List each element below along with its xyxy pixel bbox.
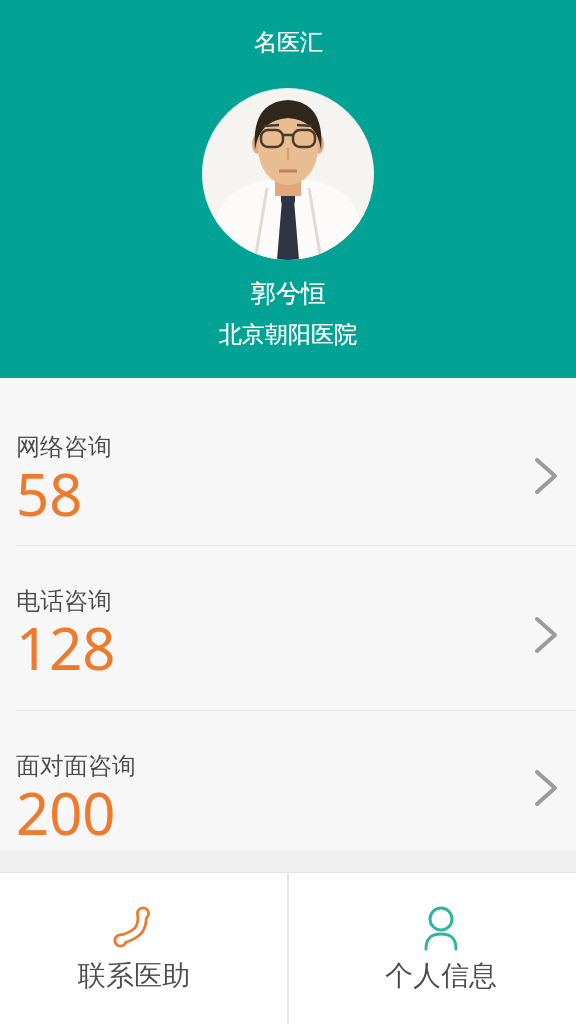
button[interactable]: 个人信息	[297, 872, 576, 1024]
button[interactable]	[202, 88, 374, 260]
staticText: 个人信息	[385, 958, 497, 993]
staticText: 郭兮恒	[251, 278, 326, 309]
button[interactable]: 面对面咨询	[0, 711, 576, 850]
staticText: 128	[16, 608, 116, 687]
button[interactable]: 网络咨询	[0, 392, 576, 545]
staticText: 58	[16, 454, 83, 533]
button[interactable]: 联系医助	[0, 872, 278, 1024]
staticText: 200	[16, 773, 116, 842]
staticText: 名医汇	[254, 28, 323, 57]
button[interactable]: 电话咨询	[0, 546, 576, 710]
staticText: 网络咨询	[16, 432, 112, 462]
staticText: 面对面咨询	[16, 751, 136, 781]
staticText: 电话咨询	[16, 586, 112, 616]
staticText: 北京朝阳医院	[219, 320, 357, 349]
staticText: 联系医助	[78, 958, 190, 993]
